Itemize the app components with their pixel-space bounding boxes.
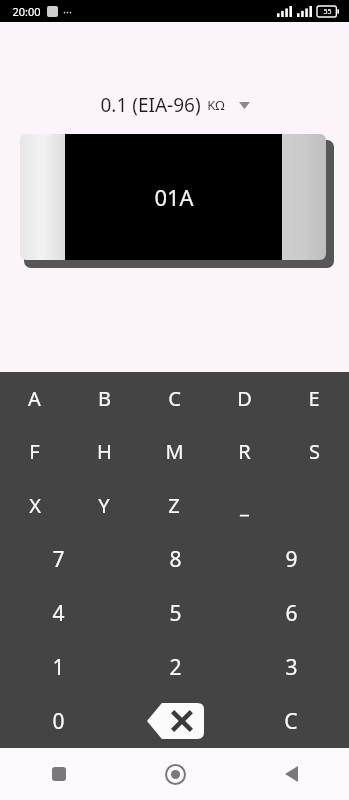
staticText: F — [29, 438, 40, 465]
button[interactable]: M — [139, 425, 209, 478]
staticText: 9 — [285, 545, 298, 574]
button[interactable]: Home — [117, 748, 233, 800]
staticText: 8 — [169, 545, 182, 574]
button[interactable]: 9 — [233, 532, 349, 586]
button[interactable]: Back — [233, 748, 349, 800]
button[interactable]: 01A — [20, 134, 330, 269]
staticText: 3 — [285, 653, 298, 682]
staticText: Y — [98, 492, 110, 519]
staticText: C — [284, 707, 298, 736]
staticText: 0.1 (EIA-96) — [100, 92, 201, 118]
button[interactable]: 7 — [0, 532, 117, 586]
button[interactable]: 8 — [117, 532, 233, 586]
staticText: 5 — [169, 599, 182, 628]
button[interactable]: C — [233, 694, 349, 748]
staticText: B — [98, 385, 111, 412]
button[interactable]: 0.1 (EIA-96) — [92, 90, 258, 120]
button[interactable]: C — [139, 372, 209, 425]
staticText: 2 — [169, 653, 182, 682]
staticText: 4 — [52, 599, 65, 628]
staticText: _ — [240, 492, 249, 519]
staticText: C — [168, 385, 181, 412]
staticText: 6 — [285, 599, 298, 628]
staticText: R — [238, 438, 251, 465]
button[interactable]: X — [0, 478, 69, 532]
button[interactable]: B — [69, 372, 139, 425]
staticText: E — [308, 385, 320, 412]
button[interactable]: 1 — [0, 640, 117, 694]
button[interactable]: 3 — [233, 640, 349, 694]
staticText: 1 — [52, 653, 65, 682]
staticText: X — [29, 492, 41, 519]
button[interactable]: E — [279, 372, 349, 425]
staticText: 01A — [154, 182, 194, 212]
staticText: S — [309, 438, 320, 465]
button[interactable]: _ — [209, 478, 279, 532]
button[interactable]: H — [69, 425, 139, 478]
button[interactable]: S — [279, 425, 349, 478]
staticText: 20:00 — [12, 4, 41, 19]
button[interactable]: 6 — [233, 586, 349, 640]
button[interactable]: Y — [69, 478, 139, 532]
button[interactable]: Backspace — [117, 694, 233, 748]
button[interactable]: 0 — [0, 694, 117, 748]
button[interactable]: Recents — [0, 748, 117, 800]
button[interactable]: 2 — [117, 640, 233, 694]
staticText: A — [28, 385, 41, 412]
staticText: Z — [168, 492, 180, 519]
staticText: ··· — [63, 4, 72, 19]
staticText: M — [165, 438, 184, 465]
staticText: 55 — [323, 7, 332, 17]
button[interactable]: 5 — [117, 586, 233, 640]
button[interactable]: 4 — [0, 586, 117, 640]
button[interactable]: F — [0, 425, 69, 478]
staticText: D — [237, 385, 252, 412]
staticText: KΩ — [207, 96, 225, 114]
staticText: 7 — [52, 545, 65, 574]
button[interactable]: A — [0, 372, 69, 425]
staticText: H — [97, 438, 112, 465]
staticText: 0 — [52, 707, 65, 736]
button[interactable]: Z — [139, 478, 209, 532]
button[interactable]: R — [209, 425, 279, 478]
button[interactable]: D — [209, 372, 279, 425]
